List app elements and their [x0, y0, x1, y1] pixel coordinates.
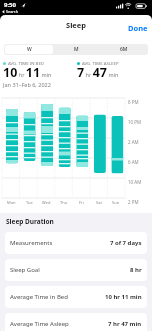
staticText: 10 AM — [128, 179, 142, 185]
staticText: Sun — [112, 200, 120, 205]
staticText: Sat — [96, 200, 102, 205]
staticText: AVG. TIME IN BED — [8, 60, 44, 66]
staticText: Wed — [42, 200, 51, 205]
button[interactable]: Measurements — [5, 232, 147, 254]
staticText: Average Time Asleep — [10, 320, 69, 328]
staticText: Jan 31–Feb 6, 2022 — [3, 81, 51, 88]
staticText: W — [27, 46, 32, 53]
staticText: Measurements — [10, 239, 53, 247]
button[interactable]: Done — [128, 23, 148, 33]
staticText: 6 AM — [128, 159, 139, 165]
staticText: 8 hr — [130, 266, 142, 274]
button[interactable]: Average Time in Bed — [5, 286, 147, 308]
staticText: 7 of 7 days — [110, 239, 142, 247]
button[interactable]: Sleep Goal — [5, 259, 147, 281]
button[interactable]: W — [5, 45, 53, 54]
staticText: Tue — [26, 200, 33, 205]
button[interactable]: Average Time Asleep — [5, 313, 147, 331]
staticText: Search — [6, 9, 19, 14]
staticText: 6 PM — [128, 99, 139, 105]
staticText: Sleep — [66, 20, 87, 30]
staticText: 7 hr 47 min — [108, 320, 142, 328]
staticText: 6M — [120, 46, 128, 53]
staticText: Sleep Duration — [6, 217, 54, 226]
staticText: 9:50 — [4, 1, 16, 9]
staticText: 2 AM — [128, 139, 139, 145]
staticText: 10 hr 11 min — [3, 64, 52, 81]
staticText: Fri — [79, 200, 84, 205]
staticText: 10 hr 11 min — [105, 293, 142, 301]
staticText: 10 PM — [128, 119, 142, 125]
button[interactable]: 6M — [100, 45, 147, 54]
staticText: AVG. TIME ASLEEP — [82, 60, 119, 66]
staticText: M — [74, 46, 79, 53]
staticText: Thu — [60, 200, 68, 205]
staticText: Done — [128, 23, 148, 33]
staticText: Sleep Goal — [10, 266, 40, 274]
staticText: 2 PM — [128, 199, 139, 205]
button[interactable]: M — [53, 45, 100, 54]
staticText: Average Time in Bed — [10, 293, 68, 301]
staticText: 7 hr 47 min — [77, 64, 119, 81]
staticText: Mon — [7, 200, 16, 205]
